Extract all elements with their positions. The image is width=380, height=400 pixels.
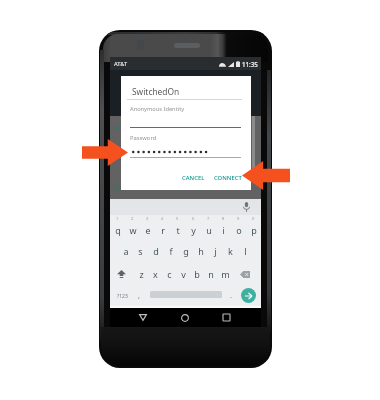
staticText: x — [153, 268, 158, 280]
staticText: 6 — [192, 216, 195, 221]
staticText: AT&T — [114, 60, 128, 68]
button[interactable]: c — [162, 262, 176, 286]
staticText: j — [214, 245, 217, 257]
staticText: g — [183, 245, 189, 257]
staticText: y — [191, 224, 196, 236]
staticText: m — [221, 268, 230, 280]
button[interactable]: m — [218, 262, 232, 286]
button[interactable]: CONNECT — [211, 170, 244, 185]
staticText: r — [161, 224, 165, 236]
button[interactable]: x — [148, 262, 162, 286]
staticText: 11:35 — [242, 60, 258, 68]
staticText: 9 — [237, 216, 240, 221]
button[interactable]: k — [223, 239, 238, 262]
staticText: u — [206, 224, 212, 236]
button[interactable]: Shift — [113, 262, 130, 286]
staticText: 3 — [146, 216, 149, 221]
staticText: n — [208, 268, 214, 280]
staticText: 2 — [131, 216, 134, 221]
button[interactable]: 9 — [231, 215, 246, 239]
button[interactable]: a — [118, 239, 133, 262]
button[interactable]: d — [148, 239, 163, 262]
staticText: 7 — [207, 216, 210, 221]
staticText: q — [115, 224, 121, 236]
button[interactable]: ?123 — [112, 286, 132, 306]
button[interactable]: Period — [225, 286, 236, 306]
button[interactable]: Backspace — [236, 262, 254, 286]
button[interactable]: v — [176, 262, 190, 286]
staticText: f — [169, 245, 173, 257]
staticText: SwitchedOn — [132, 86, 180, 97]
staticText: . — [230, 291, 232, 301]
staticText: , — [138, 291, 140, 301]
staticText: 1 — [116, 216, 119, 221]
button[interactable]: 8 — [216, 215, 231, 239]
staticText: 8 — [222, 216, 225, 221]
button[interactable]: Voice input — [242, 202, 251, 212]
staticText: h — [198, 245, 204, 257]
button[interactable]: j — [208, 239, 223, 262]
staticText: Password — [130, 134, 157, 142]
button[interactable]: Recent apps — [216, 308, 236, 327]
button[interactable]: z — [134, 262, 148, 286]
staticText: p — [251, 224, 257, 236]
staticText: Anonymous Identity — [130, 105, 185, 113]
staticText: w — [129, 224, 137, 236]
button[interactable]: f — [163, 239, 178, 262]
button[interactable]: 0 — [246, 215, 261, 239]
button[interactable]: 3 — [140, 215, 155, 239]
staticText: 4 — [161, 216, 164, 221]
button[interactable]: 7 — [201, 215, 216, 239]
button[interactable]: s — [133, 239, 148, 262]
staticText: e — [145, 224, 151, 236]
button[interactable]: 2 — [125, 215, 140, 239]
staticText: i — [222, 224, 225, 236]
staticText: a — [123, 245, 129, 257]
staticText: t — [176, 224, 180, 236]
staticText: b — [194, 268, 200, 280]
staticText: 0 — [252, 216, 255, 221]
button[interactable]: Enter — [241, 288, 256, 303]
staticText: v — [181, 268, 186, 280]
button[interactable]: Back — [133, 308, 153, 327]
staticText: k — [228, 245, 233, 257]
button[interactable]: b — [190, 262, 204, 286]
staticText: o — [236, 224, 242, 236]
staticText: CANCEL — [182, 174, 205, 182]
staticText: z — [139, 268, 144, 280]
button[interactable]: 6 — [186, 215, 201, 239]
staticText: l — [244, 245, 247, 257]
button[interactable]: h — [193, 239, 208, 262]
button[interactable]: n — [204, 262, 218, 286]
staticText: 5 — [176, 216, 179, 221]
button[interactable]: g — [178, 239, 193, 262]
staticText: s — [138, 245, 143, 257]
button[interactable]: CANCEL — [178, 170, 208, 185]
staticText: ?123 — [117, 293, 128, 300]
button[interactable]: 1 — [110, 215, 125, 239]
staticText: d — [153, 245, 159, 257]
button[interactable]: Home — [175, 308, 195, 327]
button[interactable]: 5 — [170, 215, 185, 239]
button[interactable]: l — [238, 239, 253, 262]
staticText: CONNECT — [214, 174, 242, 182]
button[interactable]: 4 — [155, 215, 170, 239]
button[interactable]: Comma — [133, 286, 144, 306]
staticText: c — [167, 268, 172, 280]
